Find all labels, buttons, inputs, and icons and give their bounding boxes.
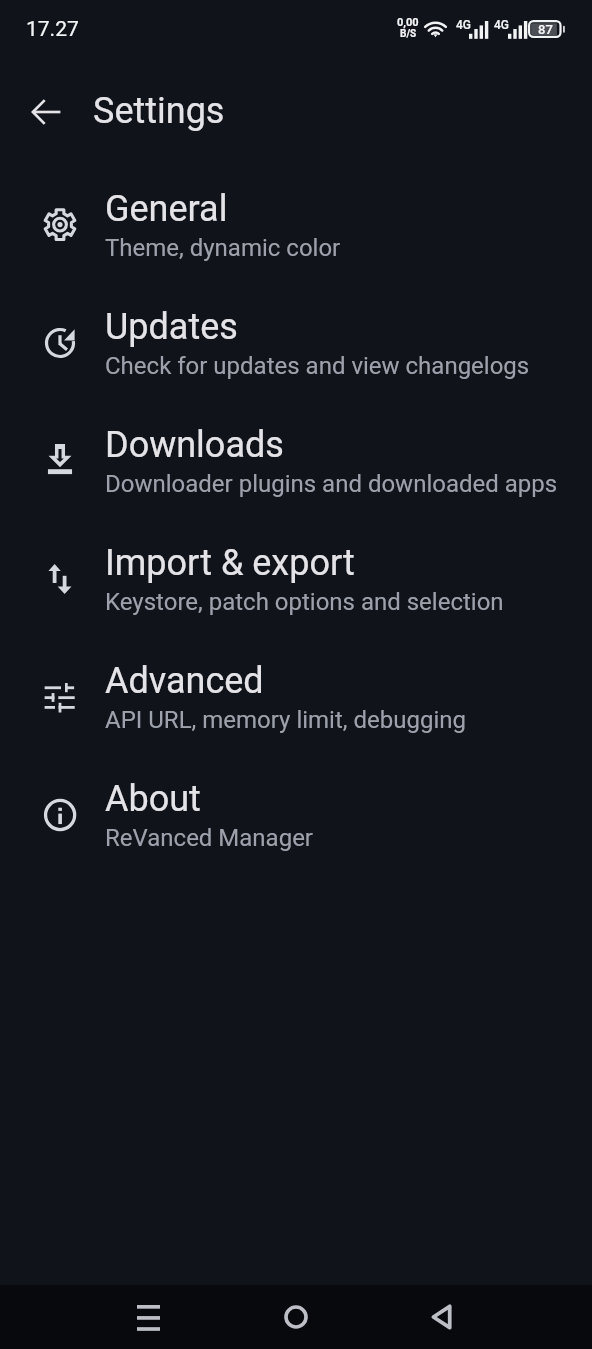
staticText: 4G [494,18,509,32]
button[interactable]: Back [18,84,74,140]
staticText: 17.27 [26,17,79,42]
staticText: 87 [538,22,553,37]
button[interactable]: Import & export [0,520,592,638]
button[interactable]: Back [411,1285,475,1349]
staticText: Theme, dynamic color [105,234,341,262]
staticText: API URL, memory limit, debugging [105,706,466,734]
staticText: General [105,188,228,230]
staticText: B/S [400,28,417,40]
staticText: Settings [93,90,225,132]
staticText: Keystore, patch options and selection [105,588,504,616]
staticText: 0,00 [397,16,419,29]
button[interactable]: About [0,756,592,874]
button[interactable]: Updates [0,284,592,402]
staticText: About [105,778,201,820]
staticText: 4G [456,18,471,32]
button[interactable]: Downloads [0,402,592,520]
staticText: Import & export [105,542,355,584]
button[interactable]: Home [264,1285,328,1349]
staticText: ReVanced Manager [105,824,313,852]
staticText: Downloader plugins and downloaded apps [105,470,558,498]
staticText: Updates [105,306,238,348]
button[interactable]: General [0,166,592,284]
staticText: Check for updates and view changelogs [105,352,530,380]
button[interactable]: Advanced [0,638,592,756]
button[interactable]: Recent apps [116,1285,180,1349]
staticText: Downloads [105,424,284,466]
staticText: Advanced [105,660,264,702]
